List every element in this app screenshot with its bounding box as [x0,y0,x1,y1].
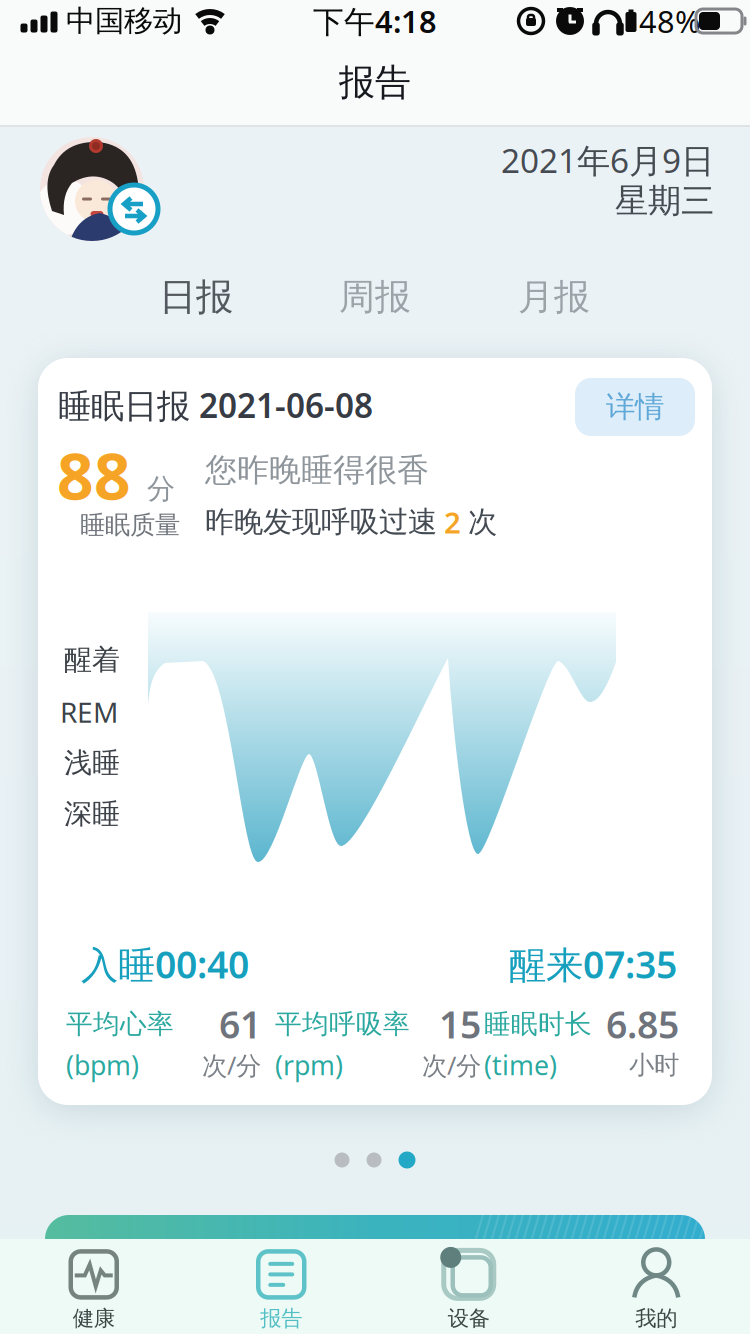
staticText: 平均心率 [66,1008,174,1040]
staticText: 设备 [448,1305,490,1332]
staticText: 详情 [606,389,664,425]
staticText: (bpm) [66,1047,139,1083]
staticText: (rpm) [275,1047,343,1083]
staticText: 次 [468,504,497,540]
staticText: 中国移动 [66,3,182,39]
staticText: 6.85 [606,999,679,1049]
staticText: REM [60,693,118,731]
staticText: 月报 [518,275,590,319]
button[interactable]: 详情 [575,378,695,436]
staticText: (time) [484,1047,557,1083]
staticText: 下午4:18 [313,1,437,41]
staticText: 分 [147,472,175,506]
staticText: 次/分 [202,1048,261,1082]
staticText: 平均呼吸率 [275,1008,410,1040]
staticText: 61 [219,999,261,1049]
staticText: 醒来07:35 [509,939,677,989]
staticText: 入睡00:40 [81,939,249,989]
staticText: 醒着 [64,643,120,677]
staticText: 我的 [635,1305,677,1332]
button[interactable]: 报告 [187,1241,375,1332]
staticText: 15 [439,999,481,1049]
staticText: 报告 [260,1305,302,1332]
staticText: 您昨晚睡得很香 [205,450,429,490]
staticText: 星期三 [615,180,714,221]
button[interactable]: 月报 [484,267,624,327]
staticText: 深睡 [64,797,120,831]
staticText: 次/分 [422,1048,481,1082]
button[interactable]: 设备 [375,1241,562,1332]
staticText: 日报 [159,274,233,320]
staticText: 报告 [339,60,411,105]
staticText: 睡眠质量 [80,509,180,540]
staticText: 健康 [73,1305,115,1332]
staticText: 48% [639,1,700,41]
staticText: 2 [444,502,461,541]
button[interactable]: 切换用户 [32,129,152,249]
button[interactable]: 健康 [0,1241,187,1332]
button[interactable]: 我的 [562,1241,750,1332]
staticText: 88 [57,432,131,517]
staticText: 睡眠日报 2021-06-08 [58,383,373,427]
staticText: 小时 [629,1049,679,1080]
staticText: 睡眠时长 [484,1008,592,1040]
button[interactable]: 周报 [305,267,445,327]
staticText: 2021年6月9日 [501,138,714,182]
staticText: 周报 [339,275,411,319]
staticText: 浅睡 [64,746,120,780]
staticText: 昨晚发现呼吸过速 [205,504,437,540]
button[interactable]: 日报 [126,267,266,327]
